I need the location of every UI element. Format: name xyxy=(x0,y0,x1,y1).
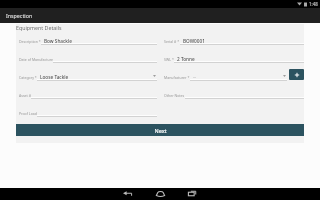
staticText: -- xyxy=(193,74,197,80)
button[interactable]: SWL * xyxy=(164,45,304,63)
button[interactable]: Back xyxy=(117,187,139,199)
button[interactable]: Manufacturer * xyxy=(164,63,304,81)
button[interactable]: Category * xyxy=(19,63,157,81)
staticText: Manufacturer * xyxy=(164,75,190,80)
button[interactable]: Next xyxy=(16,124,304,136)
staticText: SWL * xyxy=(164,57,174,62)
staticText: Next xyxy=(154,127,167,134)
button[interactable]: Add manufacturer xyxy=(289,69,304,80)
staticText: Other Notes xyxy=(164,93,185,98)
staticText: Category * xyxy=(19,75,37,80)
staticText: Description * xyxy=(19,39,41,44)
button[interactable]: Date of Manufacture xyxy=(19,45,157,63)
staticText: Serial # * xyxy=(164,39,180,44)
button[interactable]: Proof Load xyxy=(19,99,157,117)
button[interactable]: Recents xyxy=(181,187,203,199)
staticText: Inspection xyxy=(6,12,33,19)
button[interactable]: Serial # * xyxy=(164,35,304,45)
staticText: Proof Load xyxy=(19,111,37,116)
staticText: Loose Tackle xyxy=(40,74,69,80)
staticText: Asset # xyxy=(19,93,31,98)
staticText: Equipment Details xyxy=(16,24,62,31)
staticText: Bow Shackle xyxy=(44,38,72,44)
button[interactable]: Description * xyxy=(19,35,157,45)
staticText: Date of Manufacture xyxy=(19,57,53,62)
staticText: 1:48 xyxy=(309,1,318,7)
button[interactable]: Home xyxy=(149,187,171,199)
button[interactable]: Asset # xyxy=(19,81,157,99)
staticText: BOW0001 xyxy=(183,38,205,44)
staticText: 2 Tonne xyxy=(177,56,195,62)
button[interactable]: Other Notes xyxy=(164,81,304,99)
